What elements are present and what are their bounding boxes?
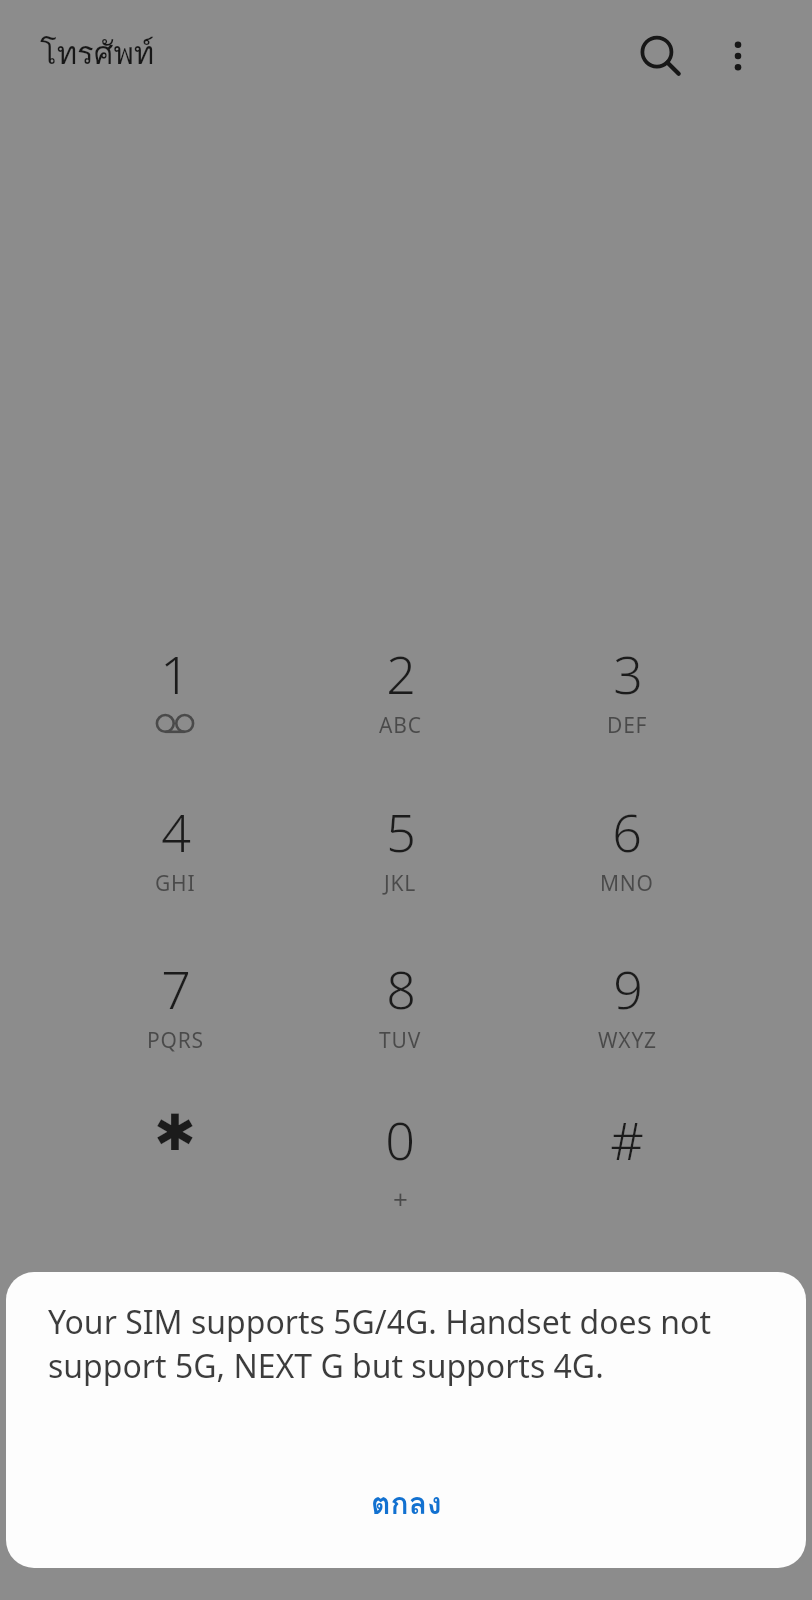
staticText: DEF: [607, 711, 648, 740]
staticText: 5: [386, 796, 416, 867]
staticText: 7: [161, 953, 191, 1024]
staticText: WXYZ: [598, 1026, 657, 1055]
button[interactable]: 3: [531, 638, 723, 762]
staticText: GHI: [155, 869, 196, 898]
staticText: MNO: [600, 869, 654, 898]
button[interactable]: #: [531, 1104, 723, 1228]
staticText: 4: [161, 796, 191, 867]
button[interactable]: ตกลง: [6, 1468, 806, 1540]
staticText: 6: [612, 796, 642, 867]
staticText: #: [610, 1104, 644, 1175]
staticText: 3: [613, 638, 643, 709]
staticText: TUV: [379, 1026, 422, 1055]
staticText: 0: [385, 1104, 415, 1175]
staticText: ตกลง: [371, 1480, 442, 1528]
button[interactable]: 9: [531, 953, 723, 1077]
staticText: +: [393, 1181, 408, 1216]
button[interactable]: 2: [304, 638, 496, 762]
button[interactable]: 7: [79, 953, 271, 1077]
staticText: 9: [613, 953, 643, 1024]
button[interactable]: 0: [304, 1104, 496, 1228]
button[interactable]: Search: [622, 18, 698, 94]
button[interactable]: 4: [79, 796, 271, 920]
staticText: ABC: [379, 711, 422, 740]
staticText: PQRS: [147, 1026, 204, 1055]
staticText: Your SIM supports 5G/4G. Handset does no…: [48, 1300, 711, 1344]
staticText: ✱: [154, 1104, 196, 1162]
button[interactable]: 6: [531, 796, 723, 920]
staticText: โทรศัพท์: [40, 28, 155, 77]
button[interactable]: ✱: [79, 1104, 271, 1228]
staticText: 1: [160, 638, 190, 709]
button[interactable]: More options: [700, 18, 776, 94]
button[interactable]: 8: [304, 953, 496, 1077]
staticText: support 5G, NEXT G but supports 4G.: [48, 1344, 604, 1388]
staticText: JKL: [384, 869, 417, 898]
staticText: 8: [386, 953, 416, 1024]
button[interactable]: 1: [79, 638, 271, 762]
staticText: 2: [386, 638, 416, 709]
button[interactable]: 5: [304, 796, 496, 920]
button[interactable]: โทรศัพท์: [40, 28, 155, 77]
